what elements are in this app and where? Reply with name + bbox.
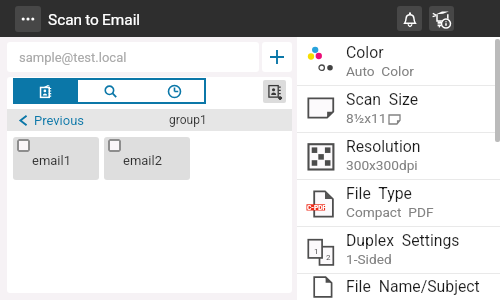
staticText: File Type xyxy=(346,184,412,203)
button[interactable]: 1 xyxy=(297,227,500,273)
button[interactable]: Previous xyxy=(7,109,93,131)
staticText: C-PDF xyxy=(307,204,327,212)
button[interactable]: email2 xyxy=(104,137,190,180)
staticText: Previous xyxy=(34,113,85,128)
button[interactable]: Add address xyxy=(262,42,292,72)
button[interactable]: email1 xyxy=(13,137,99,180)
staticText: Duplex Settings xyxy=(346,231,460,250)
staticText: Scan to Email xyxy=(48,11,141,29)
staticText: Color xyxy=(346,43,384,62)
button[interactable]: Resolution xyxy=(297,133,500,179)
button[interactable]: File Name/Subject xyxy=(297,274,500,300)
button[interactable]: Color xyxy=(297,39,500,85)
button[interactable]: Search xyxy=(78,78,142,104)
staticText: Resolution xyxy=(346,137,421,156)
button[interactable]: C-PDF xyxy=(297,180,500,226)
staticText: Scan Size xyxy=(346,90,419,109)
button[interactable]: Scan Size xyxy=(297,86,500,132)
button[interactable]: Contacts xyxy=(13,78,78,104)
staticText: 300x300dpi xyxy=(346,157,418,173)
button[interactable]: Printer information xyxy=(429,6,454,31)
button[interactable]: Recent xyxy=(142,78,206,104)
staticText: 2 xyxy=(326,253,331,262)
button[interactable]: Notifications xyxy=(397,6,422,31)
staticText: 1 xyxy=(314,247,319,256)
staticText: 1-Sided xyxy=(346,251,392,267)
button[interactable]: sample@test.local xyxy=(7,42,259,72)
staticText: File Name/Subject xyxy=(346,277,480,296)
staticText: email2 xyxy=(123,153,162,168)
staticText: sample@test.local xyxy=(19,50,127,65)
staticText: email1 xyxy=(32,153,71,168)
staticText: group1 xyxy=(169,113,207,127)
staticText: Auto Color xyxy=(346,63,414,79)
button[interactable]: Add contact xyxy=(263,80,286,103)
button[interactable]: Menu xyxy=(15,6,41,32)
staticText: Compact PDF xyxy=(346,204,434,220)
staticText: 8½x11 xyxy=(346,110,387,126)
